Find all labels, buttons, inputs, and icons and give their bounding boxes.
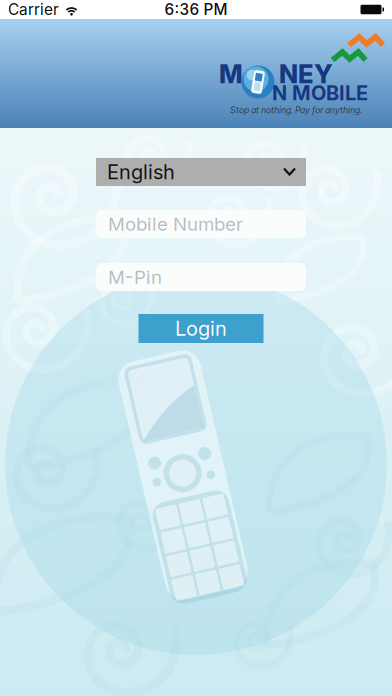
staticText: Stop at nothing. Pay for anything. xyxy=(230,105,362,115)
staticText: N MOBILE xyxy=(272,81,368,105)
button[interactable]: Mobile Number xyxy=(96,210,306,238)
staticText: 6:36 PM xyxy=(164,0,227,19)
staticText: Mobile Number xyxy=(108,213,243,235)
staticText: M xyxy=(219,59,243,89)
button[interactable]: Login xyxy=(138,314,263,343)
staticText: M-Pin xyxy=(108,266,162,288)
staticText: Login xyxy=(175,316,227,341)
staticText: English xyxy=(107,160,175,184)
staticText: Carrier xyxy=(8,0,59,19)
staticText: NEY xyxy=(279,59,333,89)
button[interactable]: English xyxy=(96,158,306,186)
button[interactable]: M-Pin xyxy=(96,263,306,291)
